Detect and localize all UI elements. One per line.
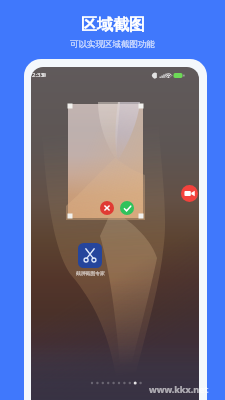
button[interactable]: Cancel [100, 201, 114, 215]
button[interactable]: 截屏截图专家 [78, 243, 102, 268]
button[interactable]: Confirm [120, 201, 134, 215]
staticText: 可以实现区域截图功能 [70, 39, 155, 50]
button[interactable]: Record screen [181, 185, 198, 202]
button[interactable]: Selection area [68, 104, 143, 218]
staticText: 2:33 [32, 71, 44, 79]
staticText: www.kkx.net [149, 383, 209, 395]
staticText: 截屏截图专家 [76, 270, 105, 276]
staticText: 区域截图 [81, 15, 145, 35]
